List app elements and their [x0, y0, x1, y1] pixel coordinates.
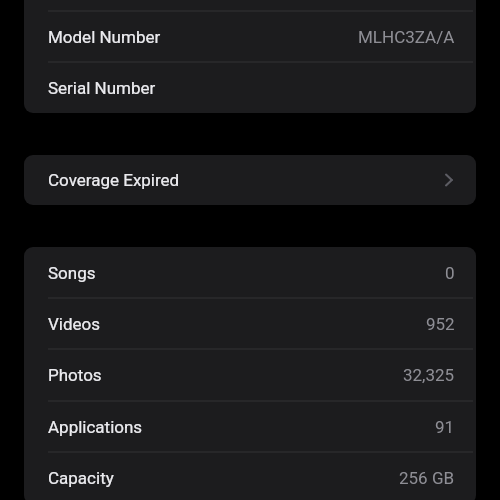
button[interactable]: Applications: [24, 401, 476, 452]
staticText: 952: [426, 314, 455, 334]
staticText: Model Number: [48, 27, 161, 47]
staticText: Coverage Expired: [48, 170, 180, 190]
other: Coverage details: [439, 169, 453, 191]
button[interactable]: Photos: [24, 349, 476, 401]
staticText: Serial Number: [48, 78, 156, 98]
staticText: 91: [435, 417, 455, 437]
staticText: Applications: [48, 417, 143, 437]
button[interactable]: Videos: [24, 298, 476, 349]
staticText: MLHC3ZA/A: [358, 27, 455, 47]
staticText: Photos: [48, 365, 102, 385]
button[interactable]: Capacity: [24, 452, 476, 500]
staticText: 0: [445, 263, 455, 283]
staticText: Videos: [48, 314, 101, 334]
button[interactable]: Model Number: [24, 11, 476, 62]
button[interactable]: Songs: [24, 247, 476, 298]
staticText: Songs: [48, 263, 96, 283]
staticText: 32,325: [403, 365, 455, 385]
button[interactable]: Coverage Expired: [24, 155, 476, 205]
button[interactable]: Name: [24, 0, 476, 11]
button[interactable]: Serial Number: [24, 62, 476, 113]
staticText: Capacity: [48, 468, 114, 488]
staticText: 256 GB: [399, 468, 455, 488]
